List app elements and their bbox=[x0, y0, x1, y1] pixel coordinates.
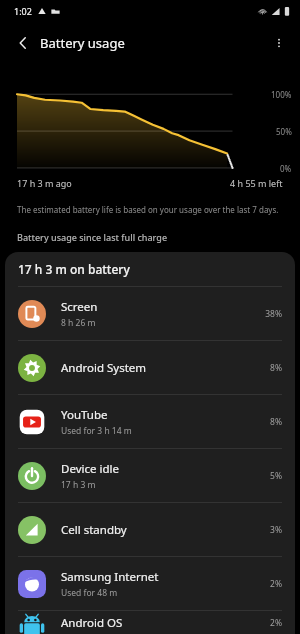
staticText: Screen bbox=[61, 299, 98, 315]
staticText: 17 h 3 m bbox=[61, 479, 96, 491]
staticText: YouTube bbox=[61, 407, 108, 423]
staticText: Battery usage bbox=[40, 34, 125, 52]
staticText: Android OS bbox=[61, 615, 123, 631]
button[interactable]: Android OS bbox=[5, 611, 295, 634]
staticText: 3% bbox=[270, 524, 282, 536]
staticText: 4 h 55 m left bbox=[230, 177, 283, 189]
staticText: 38% bbox=[265, 308, 282, 320]
staticText: 1:02 bbox=[14, 5, 32, 17]
staticText: 8% bbox=[270, 416, 282, 428]
staticText: Used for 3 h 14 m bbox=[61, 425, 132, 437]
staticText: Android System bbox=[61, 360, 147, 376]
staticText: The estimated battery life is based on y… bbox=[17, 204, 279, 215]
button[interactable]: Samsung Internet bbox=[5, 557, 295, 610]
staticText: Cell standby bbox=[61, 522, 127, 538]
staticText: 2% bbox=[270, 617, 282, 629]
button[interactable]: Android System bbox=[5, 341, 295, 394]
button[interactable]: Cell standby bbox=[5, 503, 295, 556]
button[interactable]: More options bbox=[262, 26, 296, 60]
staticText: 17 h 3 m on battery bbox=[18, 261, 130, 277]
staticText: Device idle bbox=[61, 461, 119, 477]
staticText: Battery usage since last full charge bbox=[17, 231, 168, 243]
staticText: Samsung Internet bbox=[61, 569, 159, 585]
button[interactable]: YouTube bbox=[5, 395, 295, 448]
staticText: 100% bbox=[271, 89, 292, 100]
staticText: 50% bbox=[276, 126, 292, 137]
button[interactable]: Back bbox=[6, 26, 40, 60]
staticText: 0% bbox=[280, 163, 292, 174]
staticText: Used for 48 m bbox=[61, 587, 118, 599]
staticText: 5% bbox=[270, 470, 282, 482]
button[interactable]: Screen bbox=[5, 287, 295, 340]
staticText: 2% bbox=[270, 578, 282, 590]
staticText: 8% bbox=[270, 362, 282, 374]
button[interactable]: Device idle bbox=[5, 449, 295, 502]
staticText: 8 h 26 m bbox=[61, 317, 96, 329]
staticText: 17 h 3 m ago bbox=[17, 177, 72, 189]
